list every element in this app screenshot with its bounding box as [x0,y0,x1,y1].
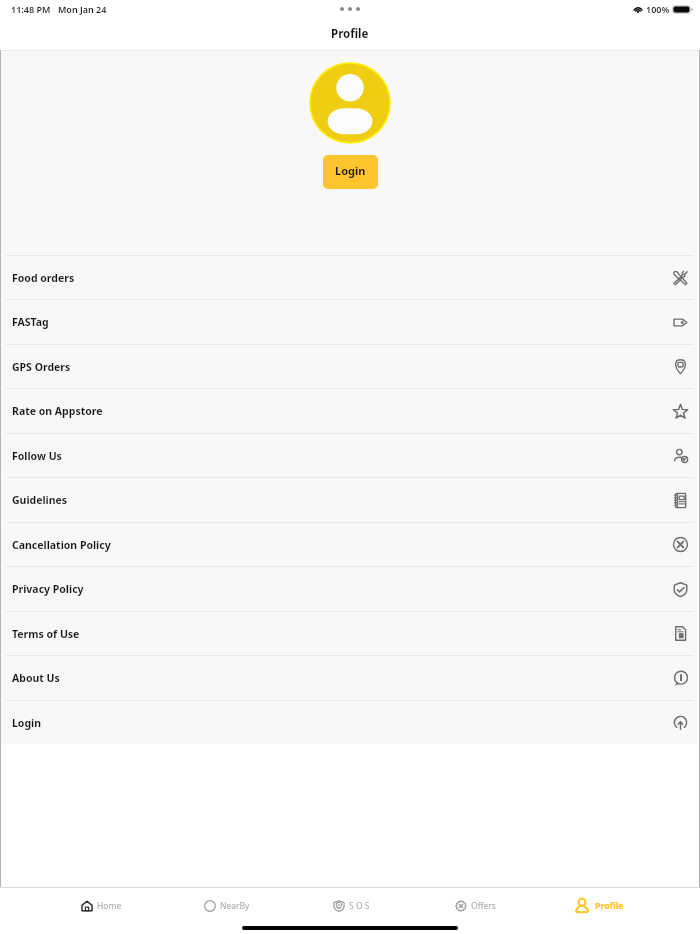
other: FASTag [672,314,689,331]
staticText: Food orders [12,271,75,285]
button[interactable]: Login [323,155,378,189]
staticText: Login [12,716,42,730]
staticText: Home [97,900,122,912]
staticText: About Us [12,671,60,685]
other: Follow Us [672,447,689,464]
staticText: Rate on Appstore [12,404,103,418]
other: Login [672,714,689,731]
other: Guidelines [672,492,689,509]
button[interactable]: Guidelines [0,478,700,522]
button[interactable]: Login [0,701,700,744]
staticText: 100% [646,3,670,15]
button[interactable]: Food orders [0,256,700,299]
button[interactable]: NearBy [164,900,289,912]
button[interactable]: GPS Orders [0,345,700,388]
other: Privacy Policy [672,581,689,598]
button[interactable]: Privacy Policy [0,567,700,611]
button[interactable]: Rate on Appstore [0,389,700,433]
staticText: S O S [349,900,370,912]
other: Rate on Appstore [672,403,689,420]
staticText: FASTag [12,315,49,329]
staticText: Login [335,163,366,178]
other: About Us [672,670,689,687]
staticText: Guidelines [12,493,68,507]
other: Food orders [672,269,689,286]
staticText: 11:48 PM [11,3,51,15]
button[interactable]: Cancellation Policy [0,523,700,566]
button[interactable]: About Us [0,656,700,700]
button[interactable]: Terms of Use [0,612,700,655]
button[interactable]: Profile [537,898,661,914]
staticText: Profile [595,900,624,912]
button[interactable]: Follow Us [0,434,700,477]
staticText: Follow Us [12,449,62,463]
staticText: Mon Jan 24 [58,3,107,15]
button[interactable]: S O S [289,900,413,912]
button[interactable]: Offers [413,900,537,912]
button[interactable]: Home [39,900,164,912]
other: GPS Orders [672,358,689,375]
staticText: Profile [331,26,369,42]
staticText: GPS Orders [12,360,71,374]
staticText: NearBy [220,900,250,912]
staticText: Privacy Policy [12,582,84,596]
staticText: Cancellation Policy [12,538,111,552]
other: Cancellation Policy [672,536,689,553]
staticText: Offers [471,900,496,912]
other: Terms of Use [672,625,689,642]
staticText: Terms of Use [12,627,80,641]
button[interactable]: FASTag [0,300,700,344]
